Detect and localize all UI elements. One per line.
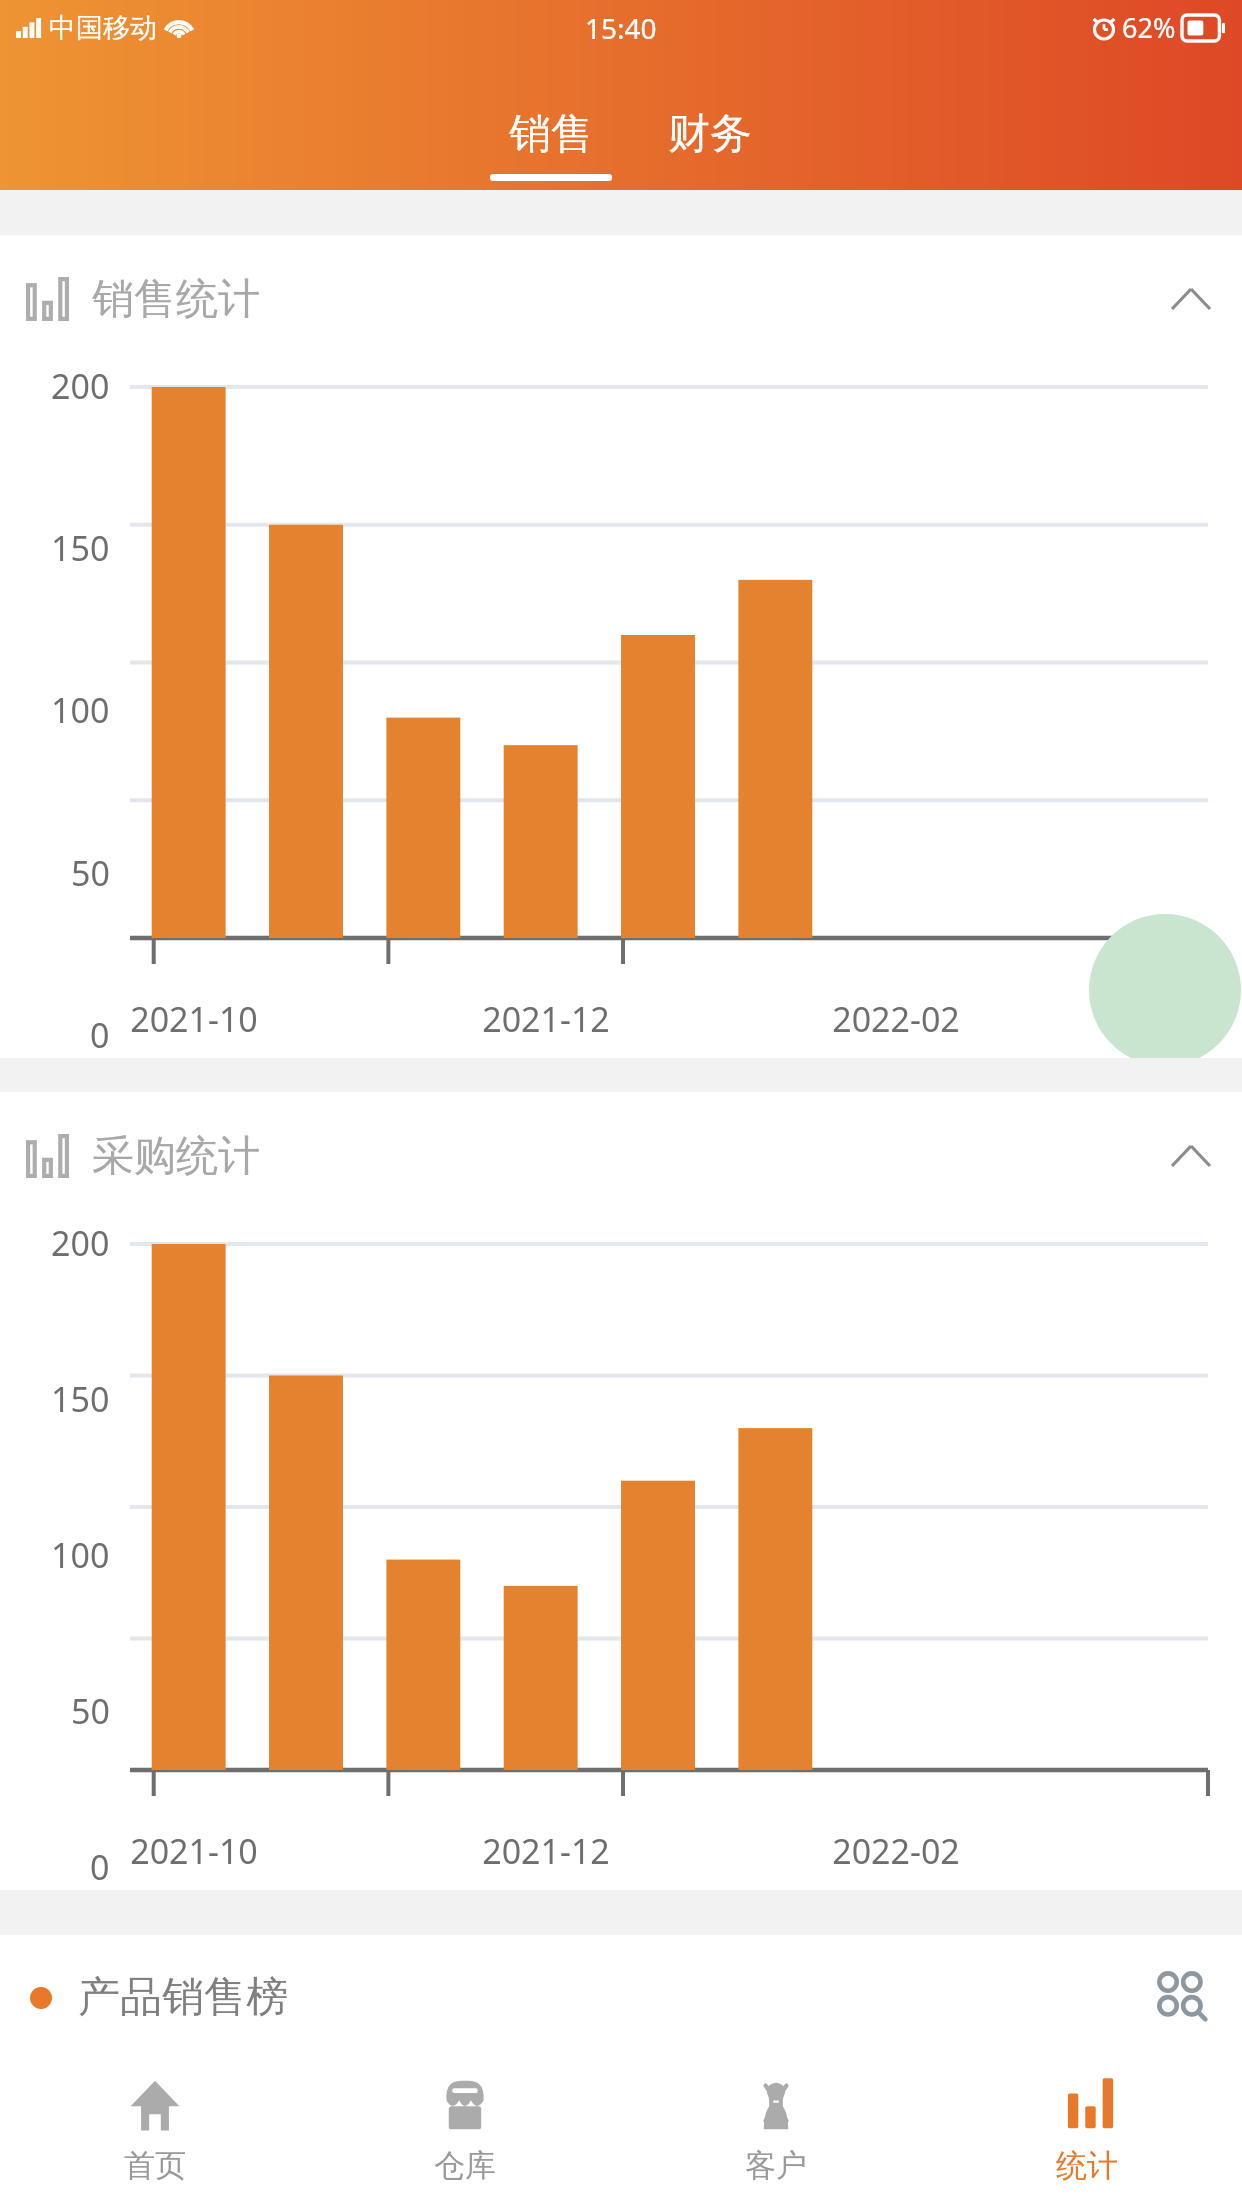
button[interactable]: 销售统计 [0, 235, 1242, 363]
staticText: 财务 [668, 108, 752, 161]
staticText: 2021-12 [482, 996, 610, 1042]
button[interactable]: 采购统计 [0, 1092, 1242, 1220]
staticText: 2021-10 [130, 996, 258, 1042]
staticText: 150 [51, 1376, 110, 1422]
other: Search products [1156, 1970, 1212, 2026]
staticText: 仓库 [434, 2146, 496, 2185]
staticText: 首页 [124, 2146, 186, 2185]
staticText: 50 [71, 850, 110, 896]
staticText: 销售统计 [92, 273, 260, 326]
button[interactable]: 首页 [0, 2060, 310, 2208]
staticText: 0 [90, 1844, 110, 1890]
button[interactable]: 产品销售榜 [0, 1935, 1242, 2060]
staticText: 150 [51, 525, 110, 571]
staticText: 100 [51, 1532, 110, 1578]
staticText: 销售 [509, 108, 593, 161]
staticText: 62% [1122, 9, 1176, 46]
button[interactable]: 客户 [620, 2060, 931, 2208]
staticText: 中国移动 [49, 11, 157, 45]
staticText: 100 [51, 687, 110, 733]
button[interactable]: 财务 [648, 108, 772, 190]
staticText: 2021-10 [130, 1828, 258, 1874]
staticText: 2021-12 [482, 1828, 610, 1874]
staticText: 0 [90, 1012, 110, 1058]
other: Collapse 销售统计 [1166, 274, 1216, 324]
staticText: 产品销售榜 [78, 1971, 288, 2024]
button[interactable]: 仓库 [310, 2060, 620, 2208]
staticText: 200 [51, 363, 110, 409]
staticText: 客户 [745, 2146, 807, 2185]
other: Collapse 采购统计 [1166, 1131, 1216, 1181]
staticText: 50 [71, 1688, 110, 1734]
staticText: 2022-02 [832, 1828, 960, 1874]
button[interactable]: 销售 [470, 108, 632, 190]
staticText: 15:40 [585, 9, 657, 47]
staticText: 2022-02 [832, 996, 960, 1042]
button[interactable]: 统计 [931, 2060, 1242, 2208]
staticText: 统计 [1056, 2146, 1118, 2185]
staticText: 200 [51, 1220, 110, 1266]
staticText: 采购统计 [92, 1130, 260, 1183]
